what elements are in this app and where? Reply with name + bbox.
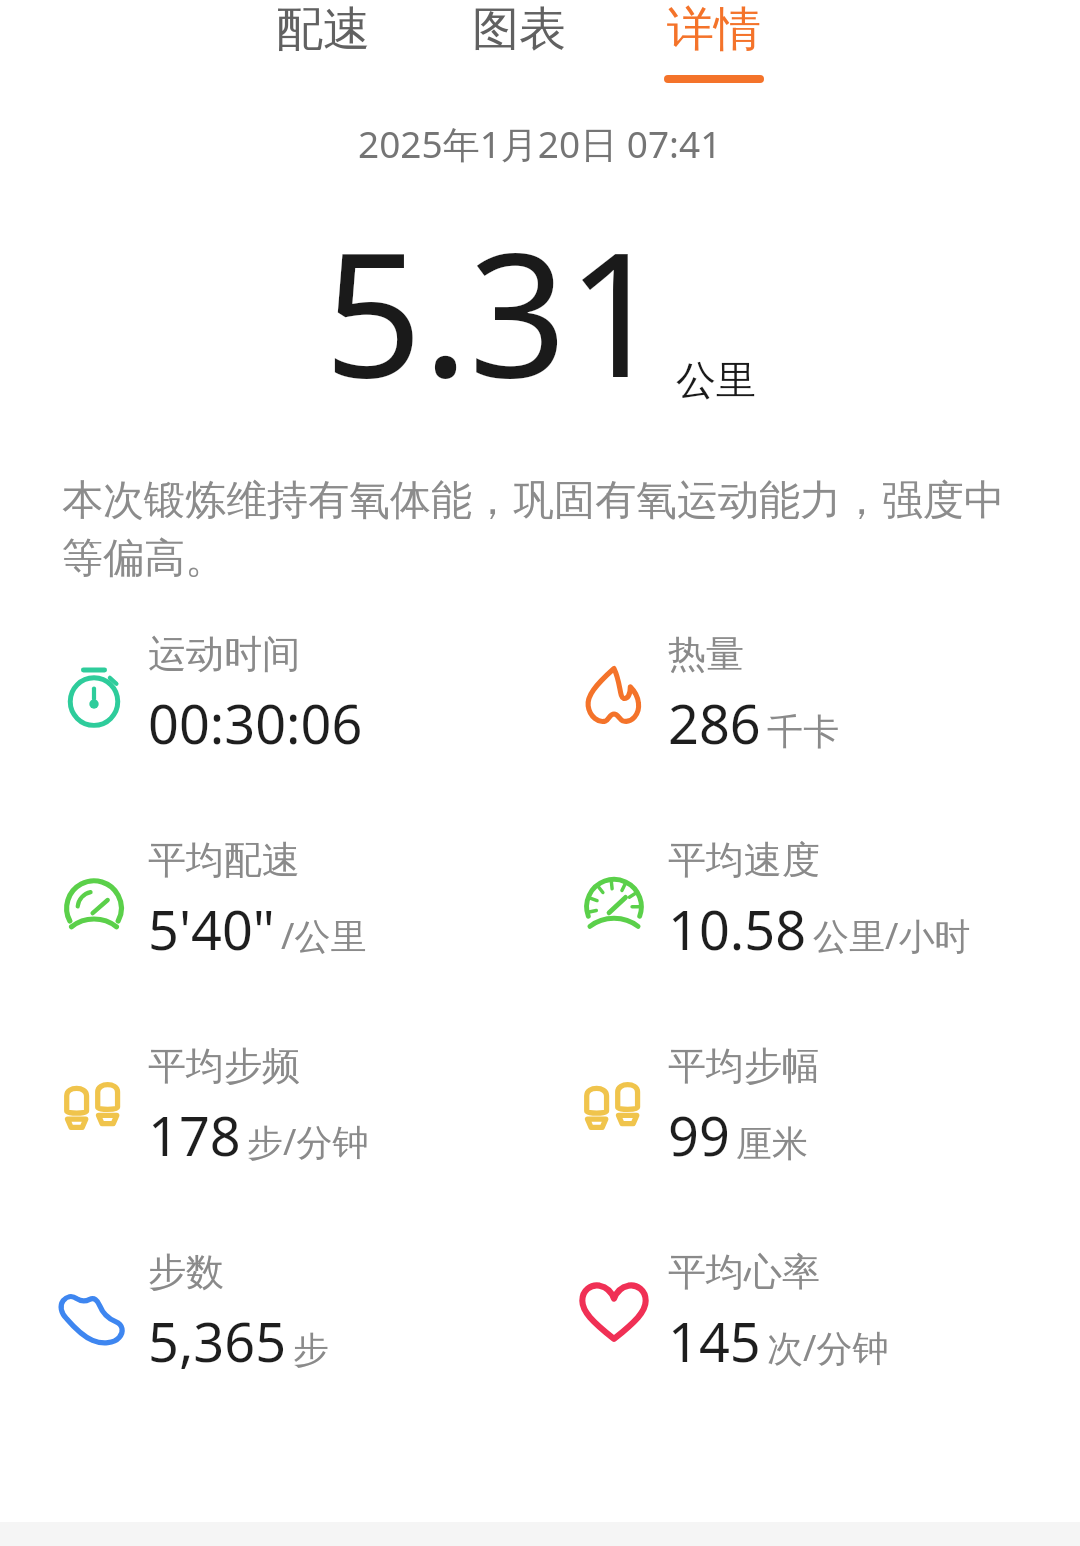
staticText: 运动时间 [148, 630, 300, 678]
button[interactable]: Average pace [0, 836, 540, 966]
staticText: 图表 [472, 0, 566, 59]
staticText: 99 [668, 1098, 730, 1172]
staticText: 次/分钟 [767, 1323, 889, 1372]
other: Average speed [578, 865, 650, 937]
staticText: 厘米 [736, 1121, 808, 1166]
button[interactable]: 详情 [658, 0, 770, 83]
button[interactable]: Calories [540, 630, 1080, 760]
staticText: /公里 [281, 911, 367, 960]
staticText: 平均配速 [148, 836, 300, 884]
staticText: 5.31 [324, 193, 666, 427]
button[interactable]: Average speed [540, 836, 1080, 966]
button[interactable]: Steps cadence [540, 1042, 1080, 1172]
staticText: 平均心率 [668, 1248, 820, 1296]
other: Average heart rate [578, 1277, 650, 1349]
other: Steps cadence [63, 1076, 125, 1138]
staticText: 公里 [676, 355, 756, 405]
staticText: 145 [668, 1304, 761, 1378]
staticText: 2025年1月20日 07:41 [358, 118, 722, 169]
button[interactable]: 图表 [466, 0, 572, 75]
staticText: 10.58 [668, 892, 807, 966]
button[interactable]: Steps cadence [0, 1042, 540, 1172]
staticText: 详情 [667, 0, 761, 59]
other: Calories [580, 661, 648, 729]
staticText: 5,365 [148, 1304, 287, 1378]
button[interactable]: Average heart rate [540, 1248, 1080, 1378]
staticText: 步/分钟 [247, 1117, 369, 1166]
staticText: 平均步幅 [668, 1042, 820, 1090]
staticText: 热量 [668, 630, 744, 678]
staticText: 步 [293, 1327, 329, 1372]
staticText: 配速 [276, 0, 370, 59]
staticText: 00:30:06 [148, 686, 363, 760]
staticText: 5'40" [148, 892, 275, 966]
button[interactable]: 配速 [270, 0, 376, 75]
staticText: 平均速度 [668, 836, 820, 884]
staticText: 千卡 [767, 709, 839, 754]
staticText: 平均步频 [148, 1042, 300, 1090]
other: Step count [58, 1277, 130, 1349]
staticText: 本次锻炼维持有氧体能，巩固有氧运动能力，强度中等偏高。 [62, 475, 1022, 584]
staticText: 286 [668, 686, 761, 760]
button[interactable]: Duration [0, 630, 540, 760]
staticText: 178 [148, 1098, 241, 1172]
other: Average pace [58, 865, 130, 937]
other: Steps cadence [583, 1076, 645, 1138]
button[interactable]: Step count [0, 1248, 540, 1378]
staticText: 公里/小时 [813, 911, 971, 960]
staticText: 步数 [148, 1248, 224, 1296]
other: Duration [61, 662, 127, 728]
